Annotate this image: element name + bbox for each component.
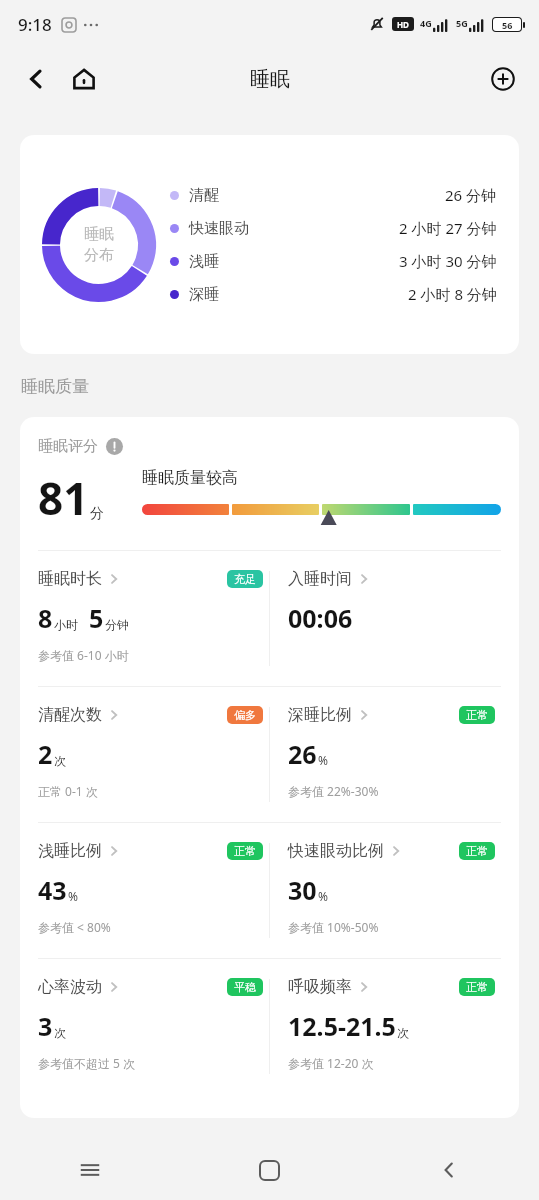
button[interactable]: 深睡比例: [288, 687, 501, 822]
staticText: 正常: [466, 980, 488, 994]
staticText: 2 小时 27 分钟: [399, 218, 497, 238]
staticText: 次: [54, 753, 66, 768]
staticText: 充足: [234, 572, 256, 586]
staticText: 次: [54, 1025, 66, 1040]
staticText: 5G: [456, 17, 468, 29]
staticText: %: [318, 752, 328, 768]
staticText: 分: [90, 505, 104, 523]
button[interactable]: 心率波动: [38, 959, 269, 1094]
staticText: 26 分钟: [445, 185, 497, 205]
staticText: 参考值 10%-50%: [288, 919, 379, 935]
staticText: 清醒: [189, 186, 219, 205]
staticText: 81: [38, 468, 89, 528]
staticText: 3: [38, 1009, 53, 1043]
button[interactable]: Back: [359, 1140, 539, 1200]
button[interactable]: 清醒次数: [38, 687, 269, 822]
staticText: 2: [38, 737, 53, 771]
staticText: 偏多: [234, 708, 256, 722]
staticText: 正常: [466, 844, 488, 858]
staticText: 分布: [84, 246, 114, 265]
staticText: 睡眠质量较高: [142, 468, 238, 488]
staticText: 正常: [466, 708, 488, 722]
staticText: 参考值 22%-30%: [288, 783, 379, 799]
staticText: %: [318, 888, 328, 904]
staticText: 深睡: [189, 285, 219, 304]
button[interactable]: Home: [62, 57, 106, 101]
staticText: 分钟: [105, 617, 129, 632]
staticText: 呼吸频率: [288, 977, 352, 997]
staticText: 9:18: [18, 13, 52, 36]
staticText: 睡眠时长: [38, 569, 102, 589]
staticText: 睡眠质量: [21, 376, 89, 397]
staticText: 平稳: [234, 980, 256, 994]
staticText: 次: [397, 1025, 409, 1040]
staticText: %: [68, 888, 78, 904]
button[interactable]: Home: [179, 1140, 359, 1200]
staticText: 4G: [420, 17, 432, 29]
staticText: 5: [89, 601, 104, 635]
button[interactable]: Info: [106, 438, 123, 455]
staticText: HD: [397, 19, 409, 30]
staticText: 30: [288, 873, 317, 907]
button[interactable]: 浅睡比例: [38, 823, 269, 958]
staticText: 睡眠: [250, 67, 290, 92]
staticText: 浅睡比例: [38, 841, 102, 861]
staticText: 快速眼动: [189, 219, 249, 238]
staticText: 参考值不超过 5 次: [38, 1055, 136, 1071]
staticText: 参考值 6-10 小时: [38, 647, 129, 663]
staticText: 3 小时 30 分钟: [399, 251, 497, 271]
staticText: 12.5-21.5: [288, 1009, 396, 1043]
staticText: 正常 0-1 次: [38, 783, 98, 799]
staticText: 8: [38, 601, 53, 635]
staticText: 睡眠: [84, 225, 114, 244]
staticText: 浅睡: [189, 252, 219, 271]
staticText: 2 小时 8 分钟: [408, 284, 497, 304]
staticText: 参考值 < 80%: [38, 919, 111, 935]
button[interactable]: Back: [14, 57, 58, 101]
staticText: 56: [502, 19, 513, 31]
button[interactable]: 呼吸频率: [288, 959, 501, 1094]
staticText: 正常: [234, 844, 256, 858]
button[interactable]: 睡眠时长: [38, 551, 269, 686]
staticText: 心率波动: [38, 977, 102, 997]
button[interactable]: 快速眼动比例: [288, 823, 501, 958]
button[interactable]: Recents: [0, 1140, 179, 1200]
staticText: 清醒次数: [38, 705, 102, 725]
staticText: 43: [38, 873, 67, 907]
staticText: 入睡时间: [288, 569, 352, 589]
staticText: 参考值 12-20 次: [288, 1055, 374, 1071]
staticText: 26: [288, 737, 317, 771]
staticText: 睡眠评分: [38, 437, 98, 456]
button[interactable]: Add: [481, 57, 525, 101]
staticText: 快速眼动比例: [288, 841, 384, 861]
button[interactable]: 入睡时间: [288, 551, 501, 686]
staticText: 00:06: [288, 601, 353, 635]
staticText: 小时: [54, 617, 78, 632]
staticText: 深睡比例: [288, 705, 352, 725]
